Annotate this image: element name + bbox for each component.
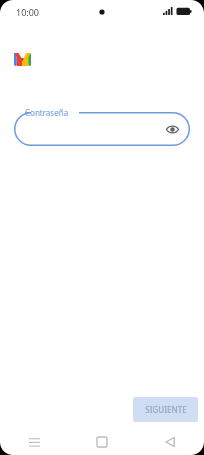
button[interactable]: Mostrar contraseña xyxy=(14,112,190,146)
button[interactable]: Inicio xyxy=(68,429,136,455)
button[interactable]: Atrás xyxy=(136,429,204,455)
button[interactable]: Mostrar contraseña xyxy=(162,119,182,139)
button[interactable]: Recientes xyxy=(0,429,68,455)
staticText: 10:00 xyxy=(16,6,40,18)
staticText: SIGUIENTE xyxy=(145,404,187,415)
button[interactable]: SIGUIENTE xyxy=(133,397,198,422)
other: Gmail xyxy=(14,53,31,66)
staticText: Contraseña xyxy=(25,107,69,118)
